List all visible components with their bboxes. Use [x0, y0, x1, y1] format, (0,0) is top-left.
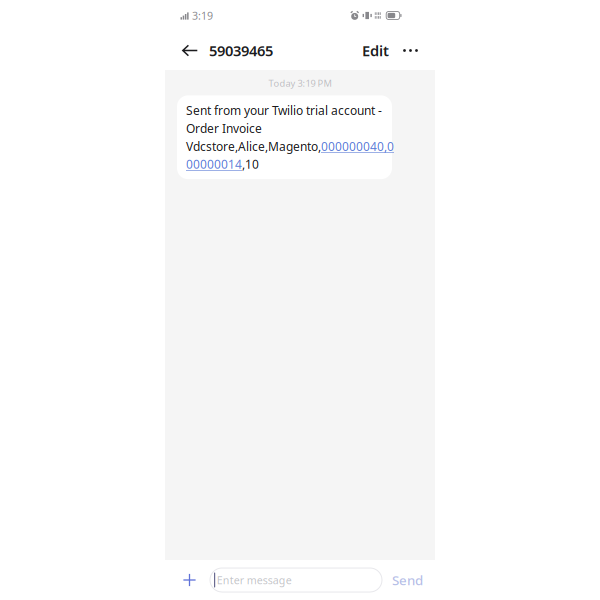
staticText: Sent from your Twilio trial account -: [186, 102, 382, 118]
button[interactable]: Edit: [362, 33, 389, 68]
staticText: Order Invoice: [186, 120, 262, 136]
staticText: 3:19: [192, 8, 213, 23]
staticText: 59039465: [209, 41, 273, 60]
button[interactable]: Back: [182, 36, 209, 64]
staticText: Enter message: [217, 573, 292, 587]
button[interactable]: More options: [389, 36, 418, 64]
staticText: Today 3:19 PM: [268, 77, 331, 89]
button[interactable]: Send: [392, 562, 423, 598]
button[interactable]: Enter message: [210, 568, 382, 592]
staticText: 000000040,0: [321, 138, 394, 154]
button[interactable]: 59039465: [209, 33, 273, 68]
staticText: Vdcstore,Alice,Magento,: [186, 138, 321, 154]
staticText: 00000014: [186, 156, 242, 172]
staticText: Send: [392, 571, 423, 589]
staticText: ,10: [242, 156, 259, 172]
button[interactable]: Add attachment: [181, 564, 198, 595]
staticText: Edit: [362, 41, 389, 60]
